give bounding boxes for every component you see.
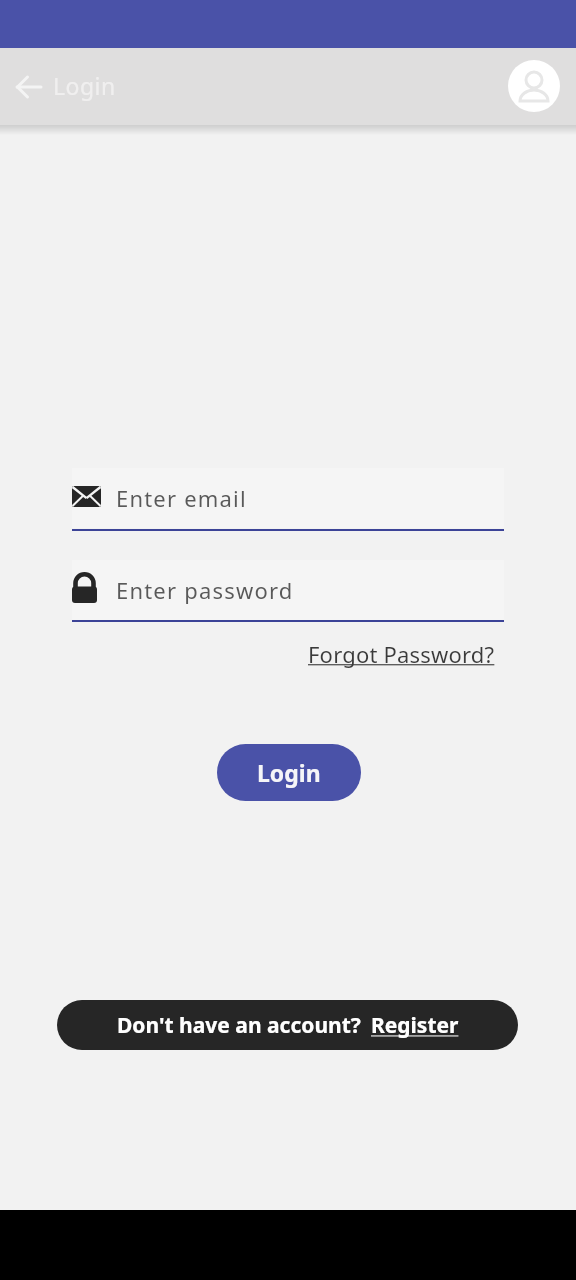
- staticText: Login: [257, 757, 321, 788]
- staticText: Login: [53, 70, 116, 101]
- button[interactable]: Enter email: [72, 468, 504, 531]
- staticText: Enter email: [116, 483, 247, 513]
- button[interactable]: Forgot Password?: [308, 639, 495, 669]
- staticText: Enter password: [116, 575, 294, 605]
- staticText: Register: [371, 1011, 459, 1040]
- button[interactable]: Enter password: [72, 560, 504, 623]
- button[interactable]: [8, 74, 52, 100]
- button[interactable]: Don't have an account?: [57, 1000, 518, 1050]
- button[interactable]: Login: [217, 744, 361, 801]
- button[interactable]: [508, 60, 560, 112]
- staticText: Don't have an account?: [117, 1011, 361, 1040]
